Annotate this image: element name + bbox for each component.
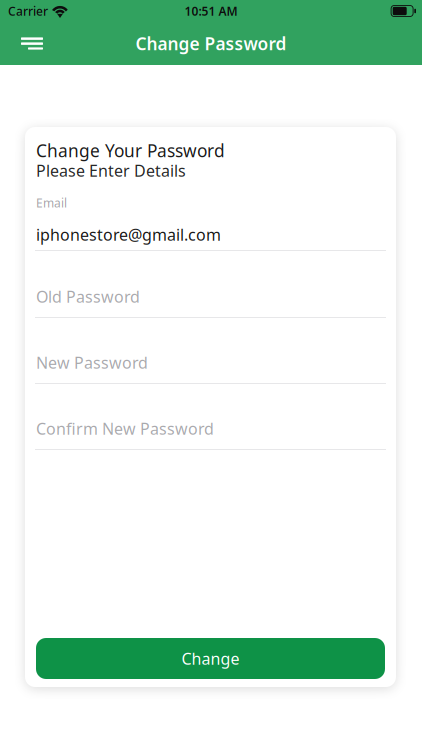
button[interactable]: Change xyxy=(36,638,385,679)
staticText: Change Your Password xyxy=(36,139,225,162)
staticText: Carrier xyxy=(8,3,48,19)
staticText: New Password xyxy=(36,352,148,373)
staticText: Email xyxy=(36,195,67,211)
staticText: Confirm New Password xyxy=(36,418,214,439)
button[interactable]: Email xyxy=(35,188,386,251)
button[interactable]: Old Password xyxy=(35,251,386,318)
button[interactable]: New Password xyxy=(35,318,386,384)
staticText: Change Password xyxy=(135,32,286,55)
button[interactable]: Confirm New Password xyxy=(35,384,386,450)
button[interactable]: Menu xyxy=(0,23,55,63)
staticText: iphonestore@gmail.com xyxy=(36,224,221,245)
staticText: 10:51 AM xyxy=(184,3,237,19)
staticText: Old Password xyxy=(36,286,140,307)
staticText: Please Enter Details xyxy=(36,160,186,181)
staticText: Change xyxy=(181,648,239,669)
